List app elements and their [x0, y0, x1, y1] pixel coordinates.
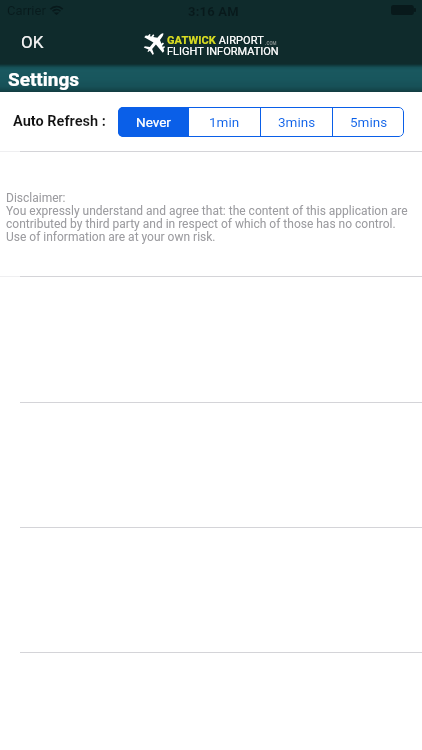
staticText: Carrier	[7, 3, 46, 18]
button[interactable]: OK	[0, 22, 65, 62]
staticText: You expressly understand and agree that:…	[6, 204, 408, 218]
staticText: 5mins	[350, 114, 388, 130]
staticText: OK	[21, 32, 44, 52]
staticText: GATWICK	[167, 34, 216, 47]
staticText: Never	[136, 114, 171, 130]
button[interactable]: 1min	[189, 107, 260, 137]
staticText: 1min	[209, 114, 240, 130]
staticText: .COM	[264, 41, 277, 46]
staticText: AIRPORT	[216, 34, 264, 47]
staticText: contributed by third party and in respec…	[6, 217, 396, 231]
button[interactable]: 5mins	[333, 107, 404, 137]
staticText: Use of information are at your own risk.	[6, 230, 216, 244]
other: Gatwick Airport logo	[143, 29, 169, 55]
other: Wi-Fi signal	[50, 5, 63, 15]
button[interactable]: 3mins	[261, 107, 332, 137]
staticText: 3:16 AM	[188, 4, 239, 19]
staticText: 3mins	[278, 114, 316, 130]
button[interactable]: Never	[118, 107, 188, 137]
staticText: Settings	[8, 68, 80, 90]
staticText: Auto Refresh :	[13, 113, 106, 130]
staticText: FLIGHT INFORMATION	[167, 45, 279, 58]
staticText: Disclaimer:	[6, 191, 66, 205]
